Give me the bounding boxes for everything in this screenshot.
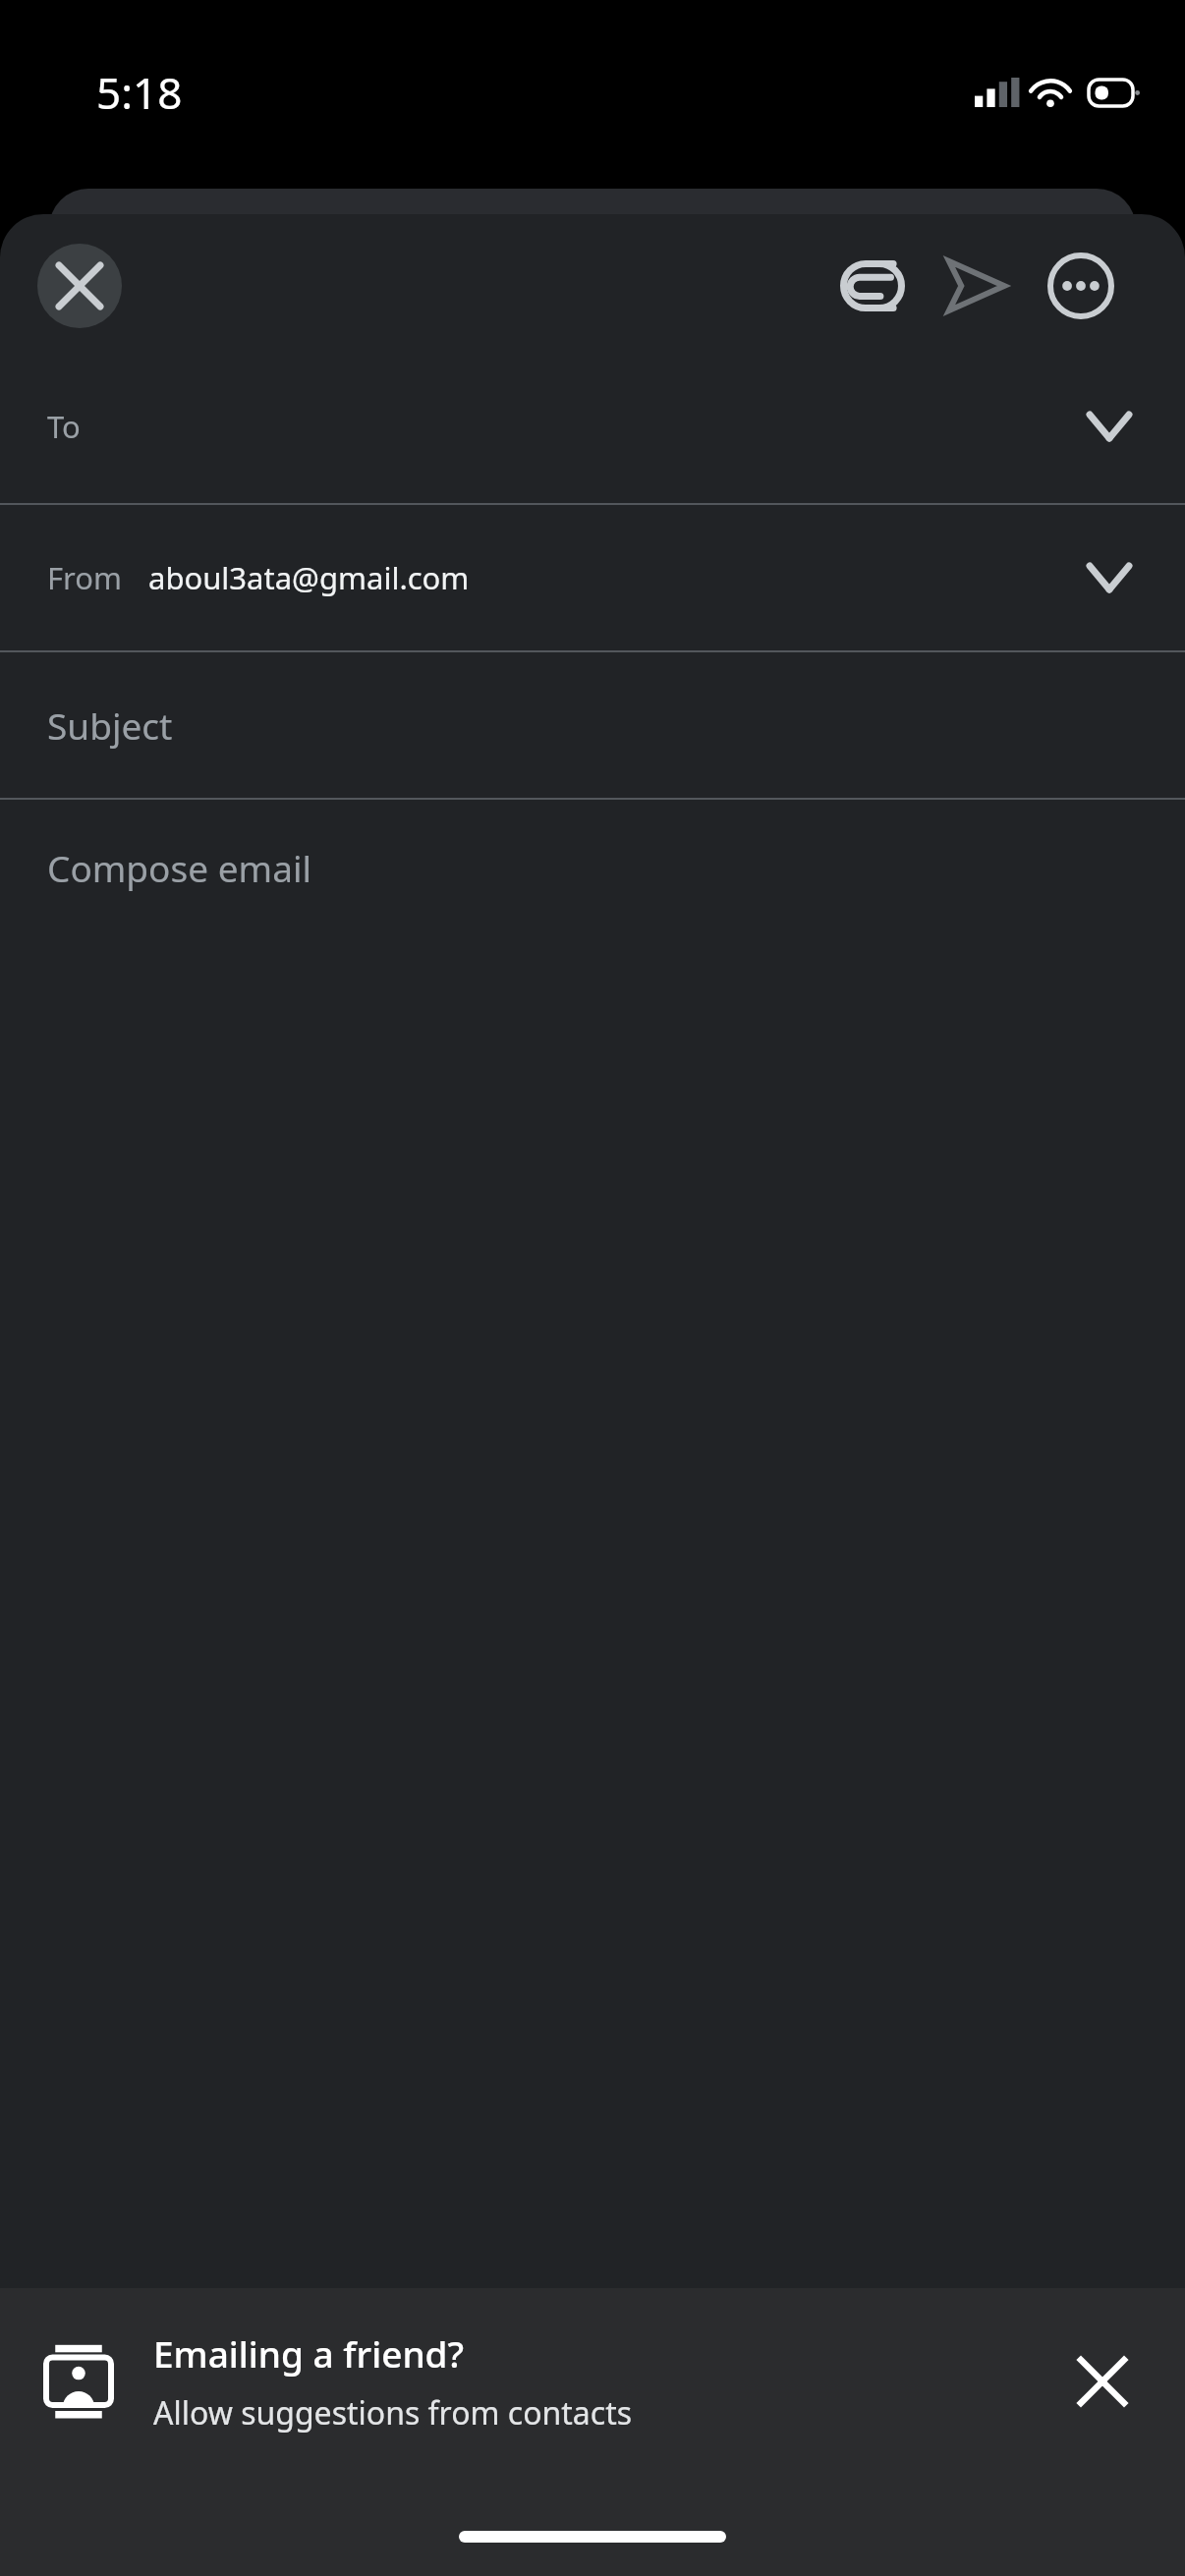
button[interactable]: To [0,349,1185,503]
button[interactable]: Attach file [825,239,920,333]
button[interactable]: From [0,505,1185,650]
staticText: From [47,557,123,598]
staticText: Compose email [47,843,312,892]
staticText: 5:18 [96,63,183,122]
staticText: To [47,406,81,447]
button[interactable]: Emailing a friend? [0,2288,1185,2475]
staticText: Allow suggestions from contacts [153,2391,633,2435]
button[interactable]: Send [930,239,1024,333]
button[interactable]: More options [1034,239,1128,333]
button[interactable]: Subject [0,652,1185,798]
button[interactable]: Compose email [0,800,1185,2288]
button[interactable]: Dismiss [1055,2334,1150,2429]
button[interactable]: Close [37,244,122,328]
staticText: aboul3ata@gmail.com [148,557,470,598]
staticText: Emailing a friend? [153,2328,465,2378]
staticText: Subject [47,700,173,750]
